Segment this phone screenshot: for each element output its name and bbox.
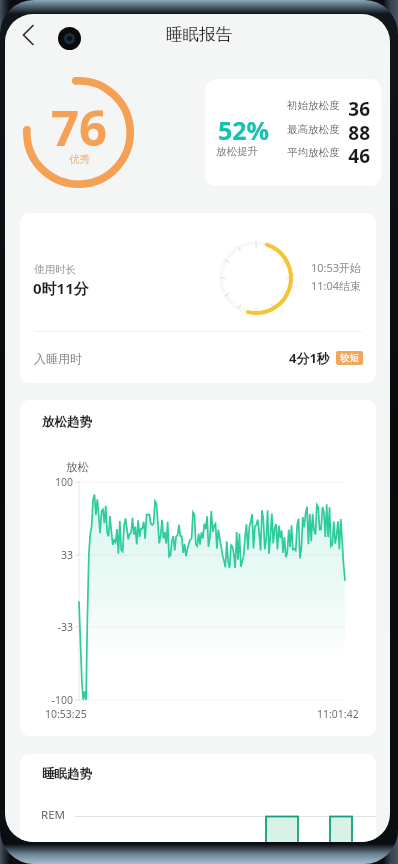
staticText: 放松提升 — [216, 145, 258, 158]
staticText: REM — [41, 807, 65, 823]
staticText: 入睡用时 — [34, 351, 82, 366]
staticText: 100 — [37, 475, 73, 489]
staticText: 76 — [51, 94, 108, 161]
staticText: 初始放松度 — [287, 99, 340, 112]
staticText: 放松趋势 — [42, 414, 92, 430]
staticText: 11:04结束 — [311, 278, 362, 293]
staticText: 11:01:42 — [317, 707, 359, 721]
staticText: -33 — [37, 620, 73, 634]
button[interactable]: 入睡用时 — [20, 332, 376, 383]
staticText: 88 — [326, 120, 370, 146]
staticText: 10:53:25 — [45, 707, 87, 721]
staticText: 0时11分 — [33, 278, 89, 298]
button[interactable]: 睡眠得分 76 优秀 — [23, 77, 134, 188]
staticText: 优秀 — [69, 153, 90, 166]
staticText: 52% — [218, 113, 270, 147]
staticText: 睡眠趋势 — [42, 766, 92, 782]
button[interactable]: 放松趋势 — [20, 400, 376, 736]
staticText: -100 — [37, 693, 73, 707]
staticText: 46 — [326, 143, 370, 169]
staticText: 较短 — [340, 352, 359, 364]
staticText: 36 — [326, 96, 370, 122]
staticText: 平均放松度 — [287, 146, 340, 159]
button[interactable]: Back — [11, 18, 45, 52]
staticText: 33 — [37, 548, 73, 562]
staticText: 4分1秒 — [289, 349, 330, 367]
staticText: 放松 — [66, 460, 89, 474]
staticText: 最高放松度 — [287, 123, 340, 136]
staticText: 使用时长 — [34, 263, 76, 276]
button[interactable]: 52% — [205, 79, 381, 186]
staticText: 10:53开始 — [311, 260, 362, 275]
button[interactable]: 睡眠趋势 — [20, 754, 376, 842]
staticText: 睡眠报告 — [164, 24, 234, 45]
